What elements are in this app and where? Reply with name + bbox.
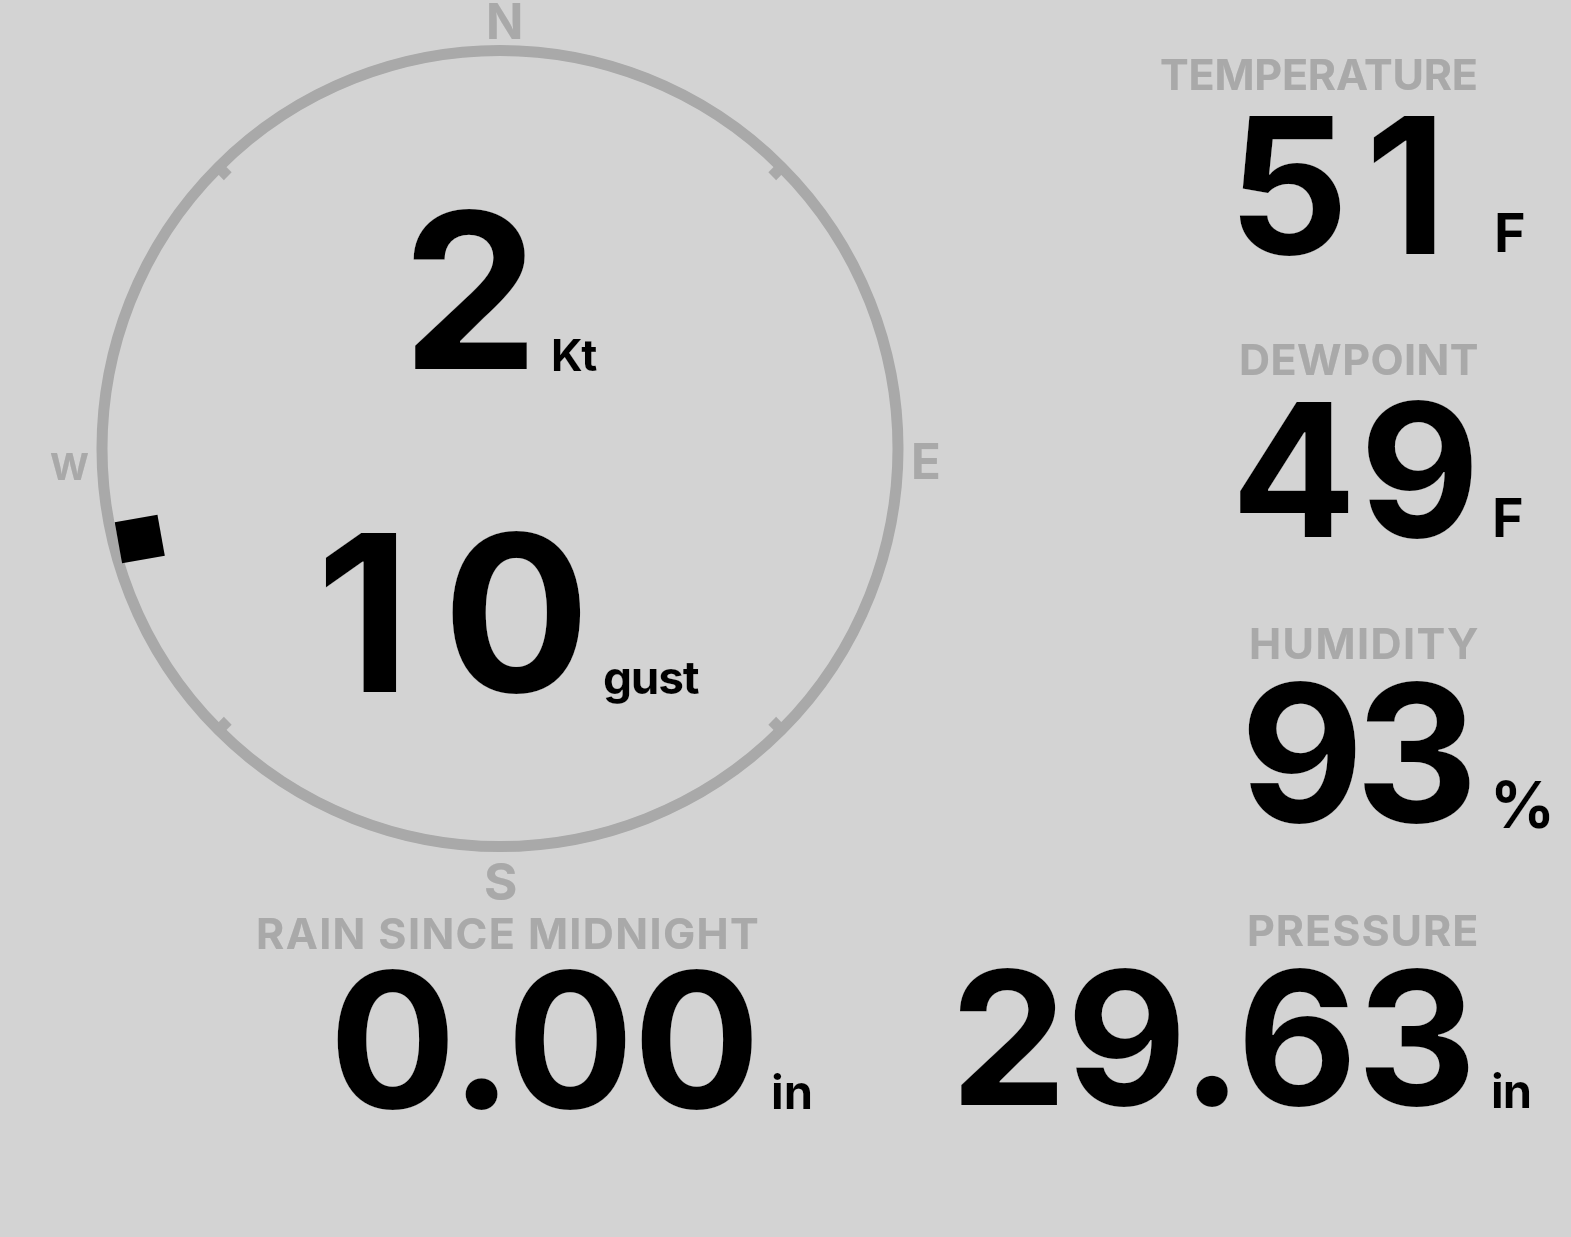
button[interactable]: Dewpoint 49 degrees Fahrenheit: [1150, 325, 1550, 555]
staticText: 29.63: [950, 925, 1477, 1150]
staticText: PRESSURE: [1247, 904, 1480, 956]
staticText: F: [1494, 200, 1526, 265]
staticText: in: [771, 1063, 813, 1120]
staticText: in: [1491, 1062, 1531, 1119]
button[interactable]: Wind 2 knots gusting 10, west south west: [85, 35, 915, 865]
button[interactable]: Humidity 93 percent: [1150, 610, 1550, 840]
button[interactable]: Rain since midnight 0.00 inches: [240, 900, 840, 1125]
staticText: 10: [316, 480, 623, 745]
staticText: E: [911, 432, 941, 491]
staticText: DEWPOINT: [1239, 333, 1479, 385]
staticText: W: [50, 444, 89, 489]
staticText: gust: [603, 649, 699, 705]
staticText: 49: [1231, 357, 1484, 582]
staticText: TEMPERATURE: [1160, 48, 1478, 100]
button[interactable]: Temperature 51 degrees Fahrenheit: [1150, 40, 1550, 270]
staticText: 93: [1240, 637, 1470, 868]
staticText: Kt: [551, 328, 596, 381]
staticText: N: [486, 0, 524, 51]
staticText: %: [1490, 766, 1555, 843]
staticText: F: [1492, 485, 1524, 550]
staticText: 0.00: [329, 925, 760, 1154]
staticText: 2: [402, 159, 539, 422]
staticText: 51: [1228, 71, 1464, 300]
staticText: S: [484, 851, 518, 913]
staticText: HUMIDITY: [1249, 617, 1480, 669]
button[interactable]: Pressure 29.63 inches: [940, 900, 1550, 1125]
staticText: RAIN SINCE MIDNIGHT: [256, 907, 761, 959]
